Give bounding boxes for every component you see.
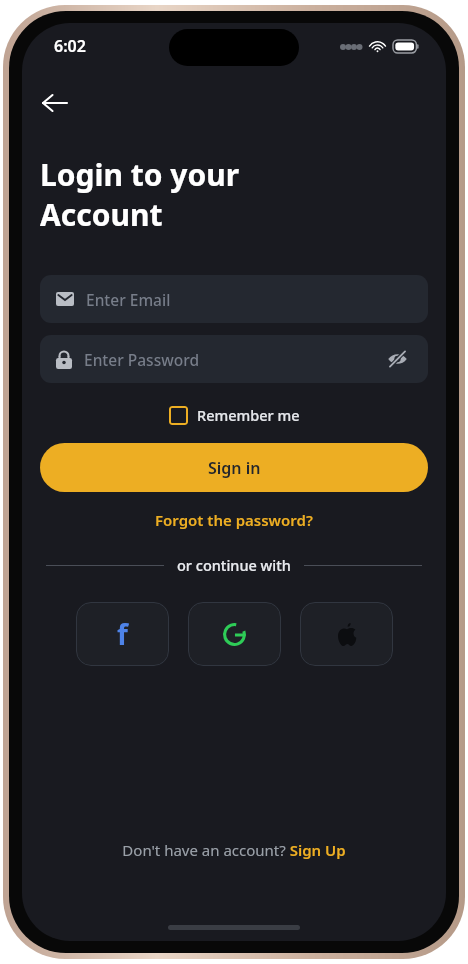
staticText: Sign in <box>208 457 261 479</box>
button[interactable]: Don't have an account? Sign Up <box>116 837 352 863</box>
staticText: Don't have an account? Sign Up <box>122 840 346 860</box>
button[interactable]: Enter Email <box>40 275 428 323</box>
staticText: Enter Password <box>84 349 382 370</box>
button[interactable]: Enter Password <box>40 335 428 383</box>
staticText: Enter Email <box>86 289 412 310</box>
staticText: Forgot the password? <box>155 510 313 530</box>
button[interactable]: Sign in with Apple <box>300 602 393 666</box>
button[interactable]: Back <box>32 81 76 125</box>
staticText: Remember me <box>197 405 300 425</box>
button[interactable]: Sign in <box>40 443 428 492</box>
button[interactable]: Remember me <box>165 401 304 429</box>
staticText: Login to your Account <box>40 154 240 235</box>
staticText: or continue with <box>177 555 291 575</box>
staticText: 6:02 <box>54 35 86 57</box>
button[interactable]: Sign in with Google <box>188 602 281 666</box>
button[interactable]: Sign in with Facebook <box>76 602 169 666</box>
button[interactable]: Toggle password visibility <box>382 344 412 374</box>
staticText: f <box>117 615 128 653</box>
button[interactable]: Forgot the password? <box>149 507 319 533</box>
